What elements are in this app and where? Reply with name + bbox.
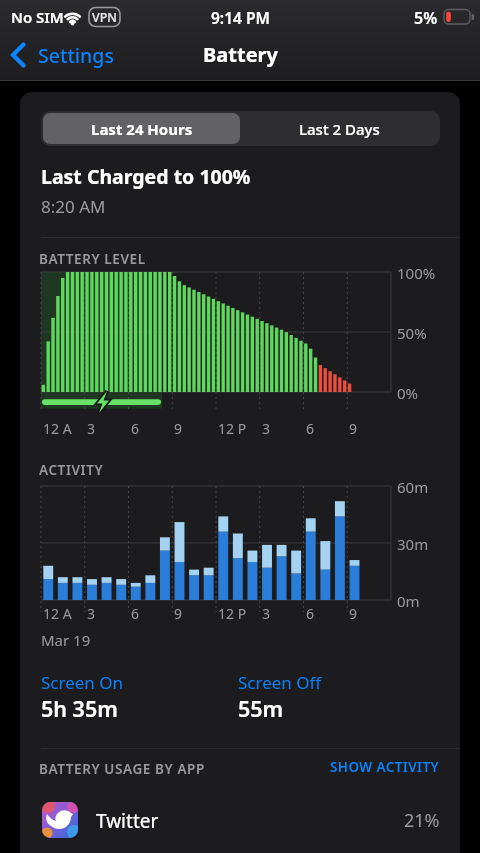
button[interactable] [30,790,460,850]
staticText: 0m [397,591,420,611]
staticText: 30m [397,534,429,554]
staticText: 9:14 PM [211,7,270,27]
staticText: 12 P [218,604,247,623]
staticText: No SIM [11,7,64,27]
button[interactable]: Last 2 Days [240,113,438,144]
staticText: 6 [131,419,140,438]
staticText: 5% [414,7,438,27]
staticText: 8:20 AM [41,195,106,218]
staticText: Battery [203,41,278,67]
staticText: 12 A [43,604,72,623]
staticText: BATTERY USAGE BY APP [39,760,205,778]
staticText: Last 2 Days [299,119,380,139]
staticText: 0% [397,383,419,403]
staticText: SHOW ACTIVITY [330,758,440,776]
staticText: VPN [92,9,118,26]
staticText: 6 [306,419,315,438]
staticText: 60m [397,477,429,497]
staticText: 21% [404,808,440,830]
staticText: Mar 19 [41,630,91,650]
button[interactable]: Last 24 Hours [43,113,240,144]
staticText: 6 [131,604,140,623]
staticText: 3 [262,604,271,623]
staticText: 3 [87,419,96,438]
staticText: 5h 35m [41,694,118,723]
staticText: ACTIVITY [39,461,104,479]
staticText: 55m [238,694,284,723]
staticText: 3 [87,604,96,623]
staticText: 9 [349,419,358,438]
staticText: 9 [174,604,183,623]
staticText: 9 [349,604,358,623]
staticText: BATTERY LEVEL [39,250,146,268]
button[interactable]: Settings [38,42,133,68]
staticText: 100% [397,263,436,283]
staticText: Last Charged to 100% [41,163,251,190]
staticText: 12 P [218,419,247,438]
staticText: 50% [397,323,427,343]
staticText: Screen Off [238,671,322,694]
staticText: Last 24 Hours [91,119,193,139]
staticText: Twitter [96,808,159,834]
staticText: 9 [174,419,183,438]
staticText: 6 [306,604,315,623]
staticText: Settings [38,42,114,68]
staticText: Screen On [41,671,124,694]
staticText: 3 [262,419,271,438]
button[interactable]: SHOW ACTIVITY [290,758,440,776]
staticText: 12 A [43,419,72,438]
